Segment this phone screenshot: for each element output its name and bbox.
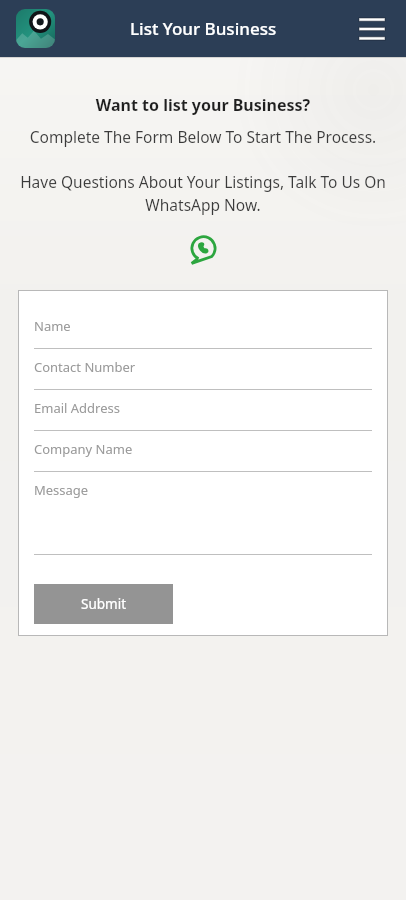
staticText: Message (34, 481, 89, 499)
staticText: Submit (81, 595, 127, 613)
staticText: Name (34, 317, 71, 335)
button[interactable]: Open navigation menu (352, 9, 392, 49)
staticText: Have Questions About Your Listings, Talk… (20, 171, 386, 216)
staticText: List Your Business (130, 17, 277, 40)
button[interactable]: Contact Number (34, 349, 372, 390)
staticText: Complete The Form Below To Start The Pro… (22, 126, 384, 147)
staticText: Email Address (34, 399, 120, 417)
staticText: Want to list your Business? (0, 94, 406, 116)
staticText: Company Name (34, 440, 133, 458)
button[interactable]: Submit (34, 584, 173, 624)
button[interactable]: Email Address (34, 390, 372, 431)
button[interactable]: Company Name (34, 431, 372, 472)
button[interactable]: App logo, home (16, 9, 55, 48)
button[interactable]: Chat with us on WhatsApp (186, 232, 220, 266)
button[interactable]: Name (34, 308, 372, 349)
staticText: Contact Number (34, 358, 136, 376)
button[interactable]: Message (34, 472, 372, 555)
